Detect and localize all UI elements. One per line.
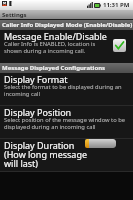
staticText: Message Enable/Disable bbox=[4, 30, 107, 42]
staticText: Caller Info is ENABLED, location is show… bbox=[4, 40, 112, 55]
staticText: Display Duration (How long message will … bbox=[4, 139, 88, 170]
button[interactable]: Message Enable/Disable checkbox bbox=[113, 39, 126, 52]
staticText: 11:31 PM bbox=[103, 1, 130, 9]
staticText: Settings bbox=[2, 11, 27, 19]
button[interactable]: Display duration toggle bbox=[85, 139, 116, 148]
staticText: Caller Info Displayed Mode (Enable/Disab… bbox=[2, 21, 133, 29]
button[interactable]: Display Format bbox=[0, 73, 133, 106]
button[interactable]: Display Position bbox=[0, 106, 133, 139]
staticText: Message Displayed Configurations bbox=[2, 64, 106, 72]
staticText: Select the format to be displayed during… bbox=[4, 83, 130, 98]
staticText: Select position of the message window to… bbox=[4, 116, 130, 131]
staticText: Display Format bbox=[4, 73, 68, 85]
button[interactable]: Message Enable/Disable bbox=[0, 30, 133, 63]
staticText: Display Position bbox=[4, 106, 72, 118]
button[interactable]: Display Duration (How long message will … bbox=[0, 139, 133, 172]
